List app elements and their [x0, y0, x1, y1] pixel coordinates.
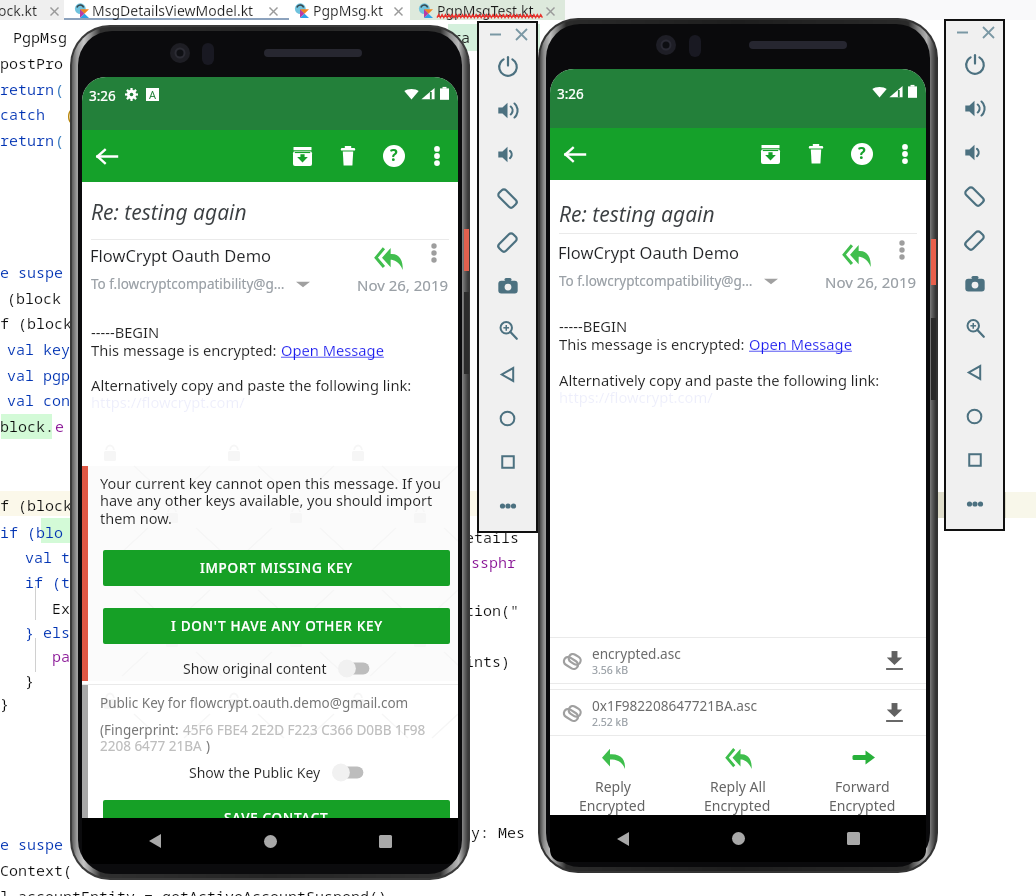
button[interactable]: Back: [946, 350, 1003, 394]
staticText: etails: [465, 527, 520, 547]
button[interactable]: Recents: [796, 815, 911, 862]
staticText: Nov 26, 2019: [357, 275, 449, 295]
staticText: ?: [390, 144, 398, 166]
button[interactable]: IMPORT MISSING KEY: [103, 550, 450, 586]
button[interactable]: Overview: [479, 440, 536, 484]
button[interactable]: Screenshot: [946, 262, 1003, 306]
staticText: 0x1F982208647721BA.asc: [592, 696, 757, 715]
staticText: https://flowcrypt.com/: [91, 392, 245, 412]
staticText: tion(": [465, 600, 520, 620]
button[interactable]: Screenshot: [479, 264, 536, 308]
button[interactable]: Home: [946, 394, 1003, 438]
staticText: }: [0, 693, 10, 713]
button[interactable]: Back: [97, 818, 213, 864]
button[interactable]: More: [946, 482, 1003, 526]
button[interactable]: Forward: [800, 735, 925, 815]
button[interactable]: Zoom: [946, 306, 1003, 350]
button[interactable]: Reply All: [675, 735, 800, 815]
staticText: (: [55, 130, 65, 150]
staticText: To f.lowcryptcompatibility@g…: [559, 272, 753, 290]
staticText: Reply All: [710, 777, 766, 796]
button[interactable]: Close: [512, 25, 530, 43]
button[interactable]: Volume down: [479, 132, 536, 176]
button[interactable]: Navigate up: [82, 130, 132, 182]
staticText: ): [206, 737, 211, 755]
button[interactable]: Navigate up: [550, 128, 600, 180]
button[interactable]: More options: [417, 136, 457, 176]
staticText: block.: [0, 416, 55, 436]
button[interactable]: Power: [946, 42, 1003, 86]
staticText: encrypted.asc: [592, 644, 681, 663]
staticText: T: [452, 131, 462, 151]
button[interactable]: SAVE CONTACT: [103, 800, 450, 818]
staticText: if (t: [25, 572, 71, 592]
button[interactable]: Minimize: [486, 25, 504, 43]
button[interactable]: Delete: [793, 131, 839, 177]
button[interactable]: Help: [839, 131, 885, 177]
button[interactable]: I DON'T HAVE ANY OTHER KEY: [103, 608, 450, 644]
staticText: assphr: [462, 552, 517, 572]
button[interactable]: Rotate left: [479, 176, 536, 220]
button[interactable]: Power: [479, 44, 536, 88]
button[interactable]: Recents: [328, 818, 443, 864]
button[interactable]: Open Message: [749, 334, 852, 354]
button[interactable]: Download: [871, 637, 917, 683]
button[interactable]: More: [479, 484, 536, 528]
button[interactable]: Volume up: [946, 86, 1003, 130]
staticText: (block: [7, 288, 62, 308]
button[interactable]: Archive: [279, 133, 325, 179]
staticText: 3.56 kB: [592, 663, 628, 677]
button[interactable]: Rotate right: [479, 220, 536, 264]
button[interactable]: Home: [479, 396, 536, 440]
button[interactable]: Zoom: [479, 308, 536, 352]
staticText: PgpMsg.kt: [313, 1, 383, 20]
button[interactable]: 0x1F982208647721BA.asc: [550, 689, 926, 735]
button[interactable]: Reply: [550, 735, 675, 815]
button[interactable]: Delete: [325, 133, 371, 179]
button[interactable]: Help: [371, 133, 417, 179]
button[interactable]: Back: [565, 815, 681, 862]
staticText: A: [149, 87, 157, 100]
staticText: I DON'T HAVE ANY OTHER KEY: [171, 617, 383, 635]
button[interactable]: Home: [213, 818, 328, 864]
button[interactable]: Open Message: [281, 340, 384, 360]
button[interactable]: Download: [871, 689, 917, 735]
staticText: pas: [52, 646, 80, 666]
button[interactable]: Close: [979, 23, 997, 41]
staticText: ?: [858, 142, 866, 164]
button[interactable]: encrypted.asc: [550, 637, 926, 683]
button[interactable]: Minimize: [953, 23, 971, 41]
staticText: ock.kt: [0, 1, 37, 20]
button[interactable]: Volume down: [946, 130, 1003, 174]
staticText: https://flowcrypt.com/: [559, 387, 713, 407]
button[interactable]: More options: [415, 234, 453, 272]
button[interactable]: Rotate left: [946, 174, 1003, 218]
button[interactable]: Home: [681, 815, 796, 862]
staticText: Re: testing again: [91, 198, 247, 227]
button[interactable]: Reply all: [366, 235, 410, 279]
staticText: ty: Mes: [462, 822, 526, 842]
button[interactable]: Volume up: [479, 88, 536, 132]
staticText: ra: [452, 27, 471, 47]
staticText: return: [0, 130, 55, 150]
button[interactable]: [338, 659, 370, 678]
staticText: 8v: [519, 27, 538, 47]
button[interactable]: Rotate right: [946, 218, 1003, 262]
staticText: Context(: [0, 860, 73, 880]
staticText: FlowCrypt Oauth Demo: [90, 244, 272, 266]
button[interactable]: More options: [883, 231, 921, 269]
staticText: -----BEGIN: [559, 316, 628, 336]
staticText: f (block: [0, 313, 73, 333]
button[interactable]: [332, 763, 364, 782]
staticText: Alternatively copy and paste the followi…: [91, 375, 412, 395]
button[interactable]: Reply all: [834, 232, 878, 276]
staticText: 3:26: [89, 87, 116, 105]
staticText: catch: [0, 104, 46, 124]
button[interactable]: Overview: [946, 438, 1003, 482]
staticText: This message is encrypted:: [91, 340, 281, 360]
staticText: }: [25, 670, 35, 690]
button[interactable]: Archive: [747, 131, 793, 177]
button[interactable]: More options: [885, 134, 925, 174]
button[interactable]: Back: [479, 352, 536, 396]
